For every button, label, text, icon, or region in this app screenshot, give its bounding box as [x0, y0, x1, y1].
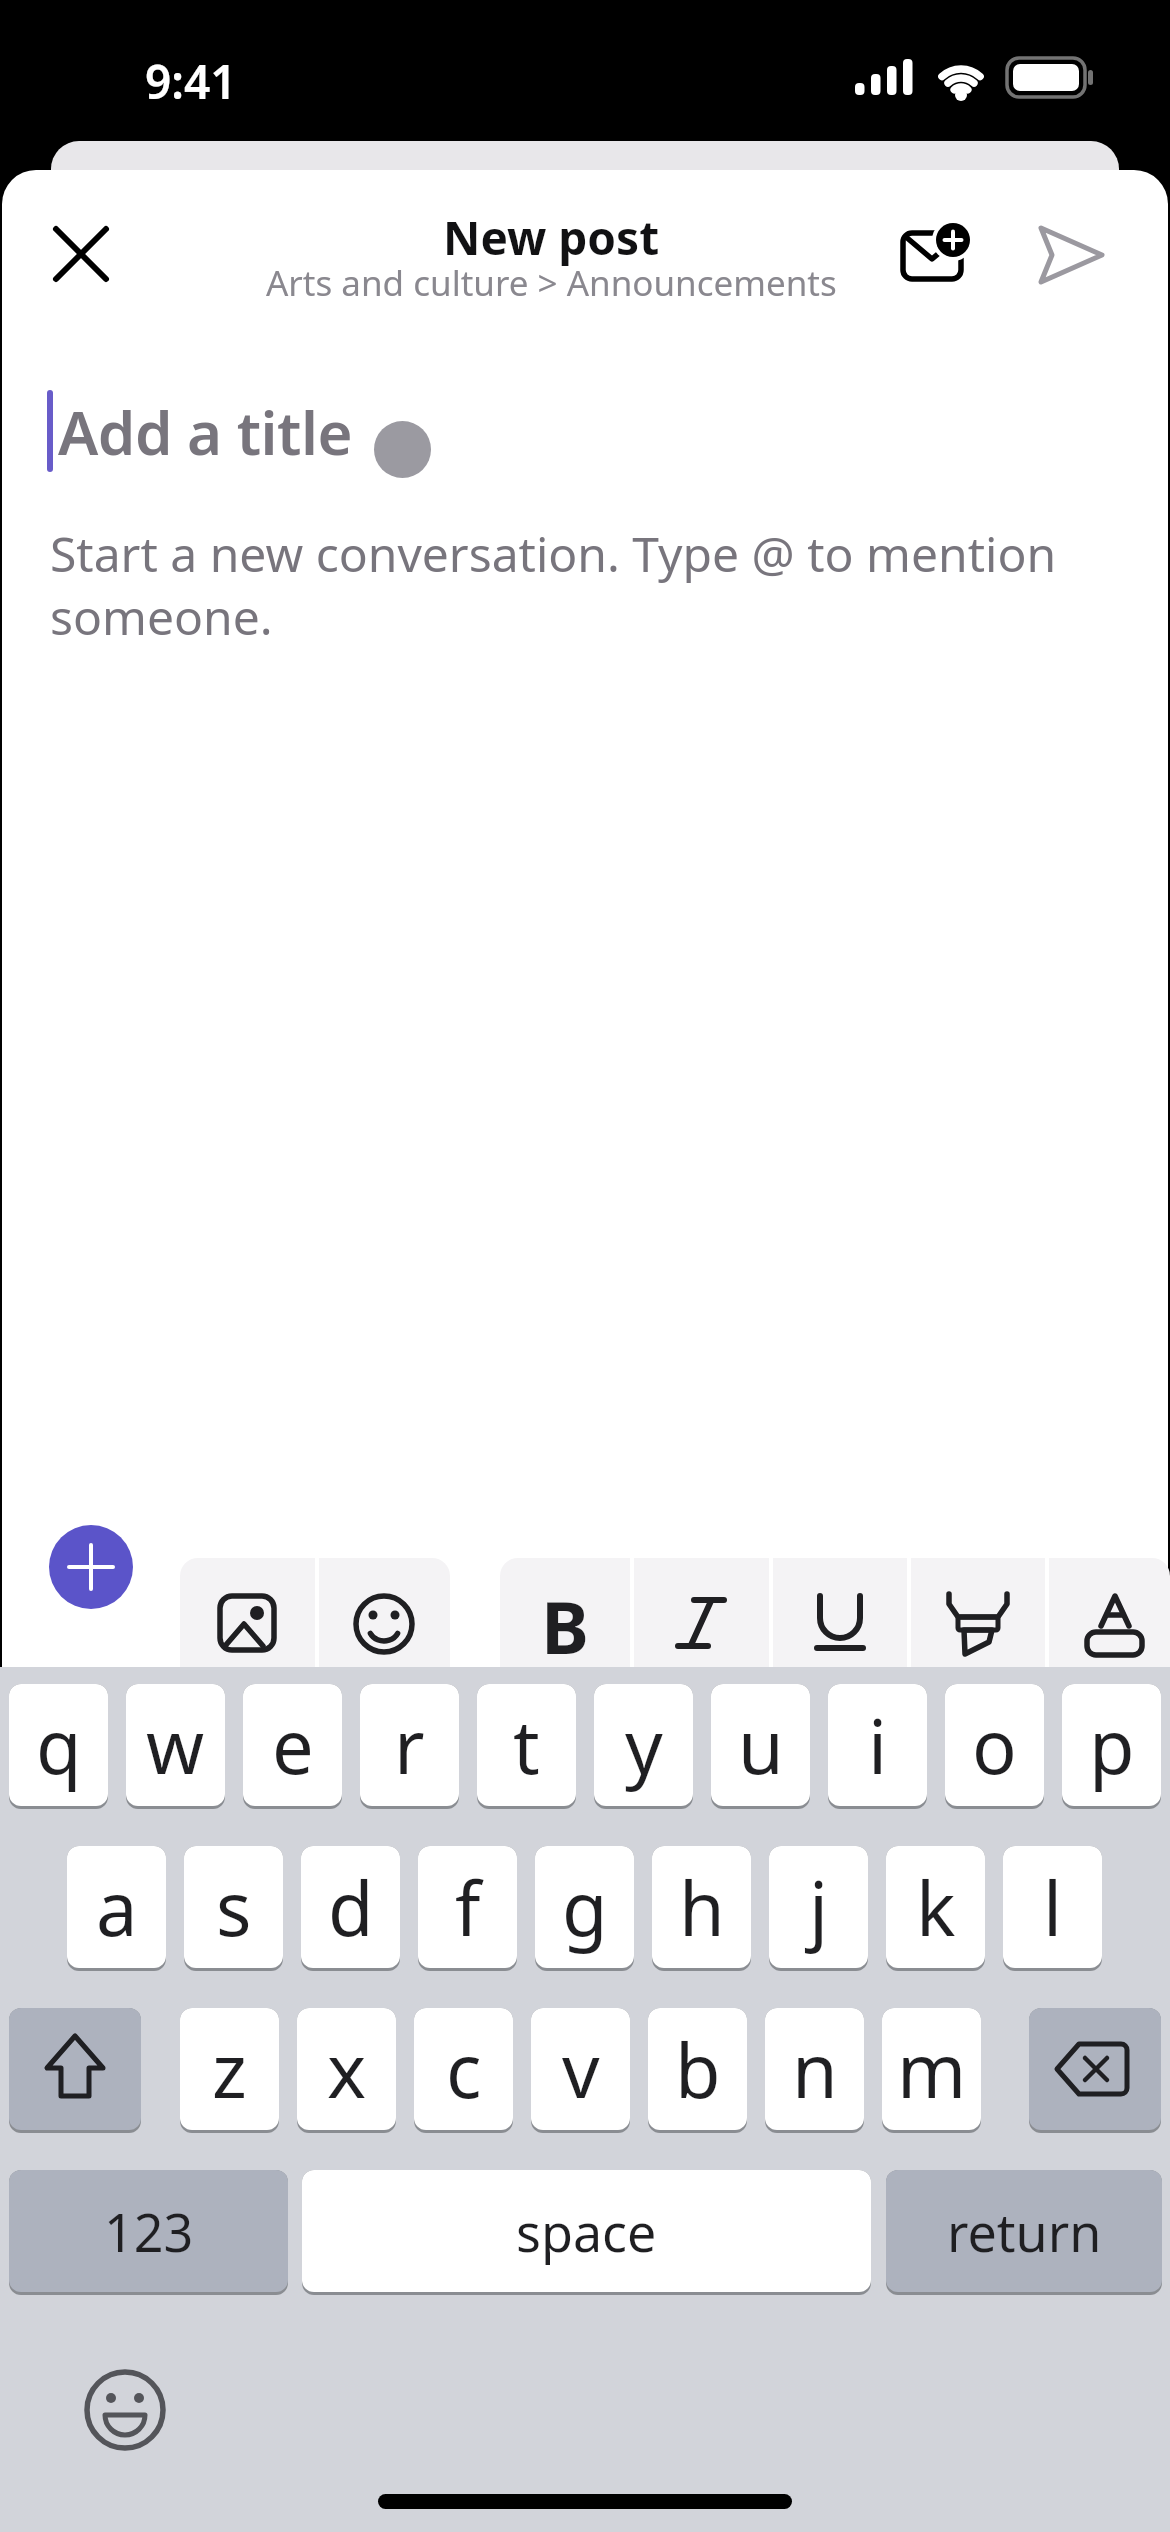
button[interactable]: f: [418, 1846, 517, 1971]
button[interactable]: j: [769, 1846, 868, 1971]
button[interactable]: y: [594, 1684, 693, 1809]
button[interactable]: [1030, 215, 1112, 297]
button[interactable]: r: [360, 1684, 459, 1809]
button[interactable]: t: [477, 1684, 576, 1809]
button[interactable]: b: [648, 2008, 747, 2133]
button[interactable]: [180, 1558, 315, 1667]
button[interactable]: [911, 1558, 1045, 1667]
button[interactable]: [9, 2008, 141, 2133]
button[interactable]: [634, 1558, 769, 1667]
button[interactable]: z: [180, 2008, 279, 2133]
staticText: Add a title: [58, 391, 353, 473]
staticText: v: [562, 2019, 600, 2120]
button[interactable]: [319, 1558, 450, 1667]
staticText: m: [897, 2019, 967, 2120]
staticText: B: [541, 1577, 589, 1675]
button[interactable]: w: [126, 1684, 225, 1809]
button[interactable]: k: [886, 1846, 985, 1971]
button[interactable]: i: [828, 1684, 927, 1809]
staticText: z: [212, 2019, 247, 2120]
staticText: j: [809, 1857, 829, 1958]
staticText: Start a new conversation. Type @ to ment…: [50, 521, 1150, 650]
button[interactable]: g: [535, 1846, 634, 1971]
button[interactable]: m: [882, 2008, 981, 2133]
button[interactable]: [49, 1525, 133, 1609]
staticText: 123: [104, 2196, 194, 2267]
button[interactable]: [895, 215, 981, 301]
button[interactable]: h: [652, 1846, 751, 1971]
staticText: s: [216, 1857, 252, 1958]
staticText: i: [868, 1695, 888, 1796]
staticText: Arts and culture > Announcements: [266, 259, 837, 307]
staticText: return: [947, 2196, 1102, 2267]
button[interactable]: [1049, 1558, 1170, 1667]
staticText: r: [394, 1695, 425, 1796]
button[interactable]: return: [886, 2170, 1162, 2295]
button[interactable]: [40, 213, 122, 295]
staticText: t: [513, 1695, 540, 1796]
staticText: y: [625, 1695, 663, 1796]
button[interactable]: n: [765, 2008, 864, 2133]
staticText: k: [916, 1857, 956, 1958]
button[interactable]: s: [184, 1846, 283, 1971]
button[interactable]: [500, 1558, 630, 1667]
staticText: c: [446, 2019, 482, 2120]
button[interactable]: o: [945, 1684, 1044, 1809]
button[interactable]: [773, 1558, 907, 1667]
staticText: d: [328, 1857, 374, 1958]
button[interactable]: u: [711, 1684, 810, 1809]
staticText: w: [146, 1695, 205, 1796]
staticText: o: [972, 1695, 1017, 1796]
staticText: b: [675, 2019, 721, 2120]
button[interactable]: [83, 2368, 167, 2452]
button[interactable]: c: [414, 2008, 513, 2133]
button[interactable]: d: [301, 1846, 400, 1971]
button[interactable]: [1029, 2008, 1161, 2133]
button[interactable]: a: [67, 1846, 166, 1971]
button[interactable]: q: [9, 1684, 108, 1809]
button[interactable]: e: [243, 1684, 342, 1809]
button[interactable]: 123: [9, 2170, 288, 2295]
staticText: n: [792, 2019, 838, 2120]
staticText: space: [516, 2196, 657, 2267]
staticText: h: [679, 1857, 725, 1958]
staticText: p: [1089, 1695, 1135, 1796]
staticText: a: [96, 1857, 138, 1958]
button[interactable]: v: [531, 2008, 630, 2133]
staticText: 9:41: [145, 50, 237, 113]
staticText: u: [738, 1695, 784, 1796]
button[interactable]: x: [297, 2008, 396, 2133]
staticText: x: [327, 2019, 367, 2120]
button[interactable]: space: [302, 2170, 871, 2295]
staticText: e: [272, 1695, 314, 1796]
staticText: f: [455, 1857, 481, 1958]
button[interactable]: p: [1062, 1684, 1161, 1809]
staticText: l: [1043, 1857, 1063, 1958]
staticText: g: [562, 1857, 608, 1958]
button[interactable]: l: [1003, 1846, 1102, 1971]
staticText: q: [36, 1695, 82, 1796]
staticText: New post: [443, 206, 660, 269]
